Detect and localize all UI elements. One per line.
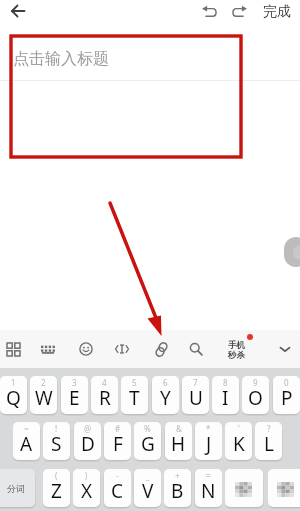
- staticText: 3: [72, 377, 77, 388]
- button[interactable]: Floating assistant: [284, 237, 300, 267]
- staticText: V: [142, 478, 154, 504]
- staticText: I: [222, 385, 229, 411]
- button[interactable]: Redo: [227, 0, 251, 24]
- staticText: #: [115, 423, 121, 434]
- staticText: G: [141, 431, 155, 457]
- button[interactable]: 7: [182, 376, 209, 414]
- staticText: ): [85, 470, 88, 481]
- staticText: 分词: [7, 483, 25, 494]
- staticText: N: [201, 478, 216, 504]
- staticText: 秒杀: [228, 350, 245, 361]
- staticText: Q: [6, 385, 21, 411]
- staticText: C: [111, 478, 124, 504]
- staticText: 2: [41, 377, 46, 388]
- staticText: P: [281, 385, 293, 411]
- staticText: D: [81, 431, 95, 457]
- button[interactable]: Grid layout: [0, 333, 29, 365]
- staticText: 0: [284, 377, 289, 388]
- staticText: 5: [132, 377, 137, 388]
- staticText: X: [81, 478, 93, 504]
- staticText: %: [144, 423, 151, 434]
- staticText: 1: [11, 377, 16, 388]
- button[interactable]: Undo: [197, 0, 221, 24]
- staticText: =: [206, 470, 211, 481]
- staticText: ~: [24, 423, 29, 434]
- staticText: *: [206, 423, 211, 434]
- staticText: B: [171, 478, 184, 504]
- button[interactable]: !: [43, 422, 70, 460]
- button[interactable]: +: [164, 469, 191, 507]
- button[interactable]: 6: [152, 376, 179, 414]
- button[interactable]: 4: [91, 376, 118, 414]
- button[interactable]: @: [74, 422, 101, 460]
- staticText: ': [238, 423, 240, 434]
- staticText: ?: [267, 423, 271, 434]
- staticText: K: [233, 431, 245, 457]
- button[interactable]: 2: [30, 376, 57, 414]
- button[interactable]: ?: [255, 422, 282, 460]
- staticText: _: [146, 470, 150, 481]
- button[interactable]: (: [43, 469, 70, 507]
- button[interactable]: Keyboard: [32, 333, 64, 365]
- staticText: 6: [163, 377, 168, 388]
- staticText: (: [55, 470, 58, 481]
- staticText: E: [69, 385, 80, 411]
- staticText: T: [129, 385, 140, 411]
- staticText: @: [84, 423, 92, 434]
- staticText: 手机: [228, 340, 245, 351]
- staticText: 8: [223, 377, 228, 388]
- button[interactable]: 0: [273, 376, 300, 414]
- button[interactable]: 手机: [224, 330, 256, 368]
- button[interactable]: &: [165, 422, 192, 460]
- staticText: 4: [102, 377, 107, 388]
- button[interactable]: Text format: [106, 333, 138, 365]
- button[interactable]: _: [134, 469, 161, 507]
- button[interactable]: 8: [212, 376, 239, 414]
- button[interactable]: Emoji: [70, 333, 102, 365]
- staticText: U: [189, 385, 203, 411]
- button[interactable]: Insert link: [145, 333, 177, 365]
- staticText: W: [35, 385, 53, 411]
- button[interactable]: 5: [121, 376, 148, 414]
- button[interactable]: Key: [225, 469, 263, 507]
- staticText: J: [206, 431, 212, 457]
- staticText: H: [171, 431, 186, 457]
- staticText: Z: [51, 478, 62, 504]
- button[interactable]: ): [73, 469, 100, 507]
- staticText: A: [20, 431, 33, 457]
- staticText: 9: [253, 377, 258, 388]
- button[interactable]: Hide keyboard: [269, 333, 300, 365]
- staticText: -: [116, 470, 119, 481]
- button[interactable]: Search: [180, 333, 212, 365]
- button[interactable]: 9: [242, 376, 269, 414]
- staticText: &: [176, 423, 182, 434]
- button[interactable]: 分词: [0, 469, 35, 507]
- button[interactable]: Key: [268, 469, 300, 507]
- button[interactable]: #: [104, 422, 131, 460]
- staticText: 完成: [263, 3, 291, 21]
- staticText: Y: [160, 385, 171, 411]
- staticText: !: [55, 423, 58, 434]
- button[interactable]: %: [134, 422, 161, 460]
- button[interactable]: =: [195, 469, 222, 507]
- button[interactable]: 3: [61, 376, 88, 414]
- button[interactable]: ': [225, 422, 252, 460]
- button[interactable]: 完成: [258, 0, 296, 24]
- staticText: S: [51, 431, 62, 457]
- button[interactable]: ~: [13, 422, 40, 460]
- staticText: L: [264, 431, 274, 457]
- staticText: 点击输入标题: [13, 49, 109, 69]
- button[interactable]: 1: [0, 376, 27, 414]
- button[interactable]: *: [195, 422, 222, 460]
- staticText: F: [113, 431, 123, 457]
- staticText: R: [99, 385, 111, 411]
- staticText: 7: [193, 377, 198, 388]
- staticText: +: [175, 470, 180, 481]
- button[interactable]: -: [104, 469, 131, 507]
- staticText: O: [248, 385, 263, 411]
- button[interactable]: Back: [7, 0, 29, 22]
